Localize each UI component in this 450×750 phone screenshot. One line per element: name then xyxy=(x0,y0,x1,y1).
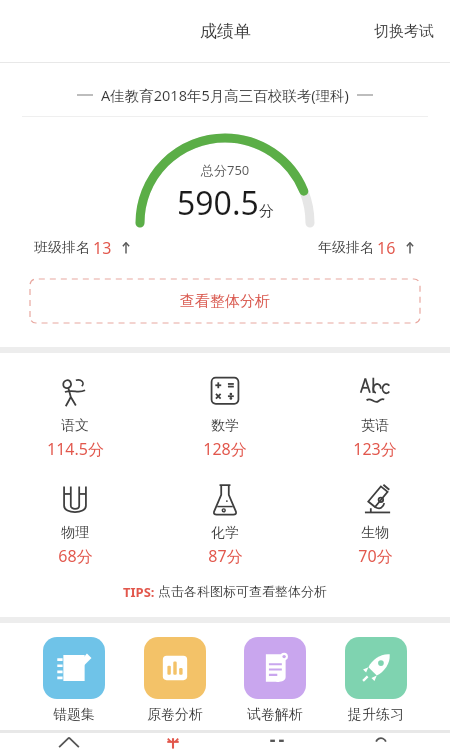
staticText: 物理 xyxy=(61,524,89,542)
staticText: 年级排名 xyxy=(318,239,374,257)
button[interactable]: 提升练习 xyxy=(341,637,411,724)
staticText: A佳教育2018年5月高三百校联考(理科) xyxy=(101,85,349,105)
staticText: 68分 xyxy=(58,545,93,567)
button[interactable]: Profile xyxy=(346,733,416,750)
button[interactable]: 试卷解析 xyxy=(240,637,310,724)
staticText: 590.5 xyxy=(177,181,259,225)
staticText: 总分750 xyxy=(201,161,250,179)
staticText: 班级排名 xyxy=(34,239,90,257)
button[interactable]: 错题集 xyxy=(39,637,109,724)
staticText: 切换考试 xyxy=(374,22,434,41)
staticText: 原卷分析 xyxy=(147,706,203,724)
button[interactable]: 英语 xyxy=(300,369,450,462)
button[interactable]: 切换考试 xyxy=(358,8,450,55)
staticText: 123分 xyxy=(353,438,397,460)
staticText: 128分 xyxy=(203,438,247,460)
staticText: 化学 xyxy=(211,524,239,542)
button[interactable]: 查看整体分析 xyxy=(30,279,420,323)
button[interactable]: 物理 xyxy=(0,476,150,569)
staticText: 英语 xyxy=(361,417,389,435)
button[interactable]: Reports xyxy=(242,733,312,750)
staticText: 分 xyxy=(259,202,274,221)
staticText: 数学 xyxy=(211,417,239,435)
staticText: 语文 xyxy=(61,417,89,435)
button[interactable]: 语文 xyxy=(0,369,150,462)
button[interactable]: Home xyxy=(34,733,104,750)
staticText: 114.5分 xyxy=(47,438,104,460)
button[interactable]: 原卷分析 xyxy=(140,637,210,724)
staticText: 生物 xyxy=(361,524,389,542)
button[interactable]: 化学 xyxy=(150,476,300,569)
staticText: TIPS: xyxy=(123,583,158,601)
button[interactable]: 生物 xyxy=(300,476,450,569)
staticText: 查看整体分析 xyxy=(180,292,270,311)
button[interactable]: 数学 xyxy=(150,369,300,462)
staticText: 成绩单 xyxy=(200,21,251,42)
staticText: 点击各科图标可查看整体分析 xyxy=(158,583,327,599)
staticText: 试卷解析 xyxy=(247,706,303,724)
staticText: 16 xyxy=(377,237,396,259)
staticText: 错题集 xyxy=(53,706,95,724)
staticText: 13 xyxy=(93,237,112,259)
staticText: 87分 xyxy=(208,545,243,567)
staticText: 70分 xyxy=(358,545,393,567)
button[interactable]: Exams xyxy=(138,733,208,750)
staticText: 提升练习 xyxy=(348,706,404,724)
